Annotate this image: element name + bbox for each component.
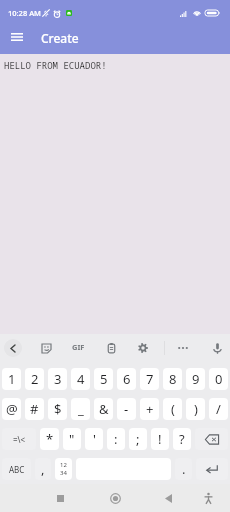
button[interactable]: 6	[117, 368, 136, 390]
button[interactable]: 0	[209, 368, 228, 390]
button[interactable]: Stickers	[35, 337, 57, 359]
button[interactable]: $	[48, 398, 67, 420]
staticText: 3	[54, 370, 62, 388]
staticText: 1	[8, 370, 16, 388]
button[interactable]: _	[71, 398, 90, 420]
button[interactable]: Recent apps	[48, 486, 72, 510]
staticText: 7	[146, 370, 154, 388]
button[interactable]: Back	[4, 339, 22, 357]
staticText: :	[114, 430, 118, 448]
button[interactable]: Home	[103, 486, 127, 510]
staticText: 10:28 AM	[8, 8, 41, 18]
button[interactable]: 12	[55, 458, 72, 480]
staticText: )	[194, 400, 198, 418]
button[interactable]: &	[94, 398, 113, 420]
button[interactable]: GIF	[68, 337, 88, 357]
button[interactable]: +	[140, 398, 159, 420]
staticText: .	[182, 460, 186, 478]
button[interactable]: :	[107, 428, 125, 450]
button[interactable]: ABC	[2, 458, 31, 480]
button[interactable]: Settings	[132, 337, 154, 359]
button[interactable]: 4	[71, 368, 90, 390]
button[interactable]: =\<	[2, 428, 36, 450]
staticText: (	[171, 400, 175, 418]
button[interactable]: .	[175, 458, 192, 480]
staticText: *	[46, 430, 54, 448]
button[interactable]: Enter	[196, 458, 228, 480]
staticText: 2	[31, 370, 39, 388]
staticText: ,	[41, 460, 45, 478]
button[interactable]: 1	[2, 368, 21, 390]
button[interactable]: 7	[140, 368, 159, 390]
staticText: 5	[100, 370, 108, 388]
staticText: $	[54, 400, 62, 418]
staticText: GIF	[72, 342, 85, 352]
button[interactable]: 2	[25, 368, 44, 390]
button[interactable]: #	[25, 398, 44, 420]
button[interactable]: Voice input	[206, 337, 228, 359]
staticText: +	[146, 400, 154, 418]
button[interactable]: 5	[94, 368, 113, 390]
button[interactable]: )	[186, 398, 205, 420]
staticText: HELLO FROM ECUADOR!	[4, 59, 107, 71]
staticText: =\<	[13, 434, 26, 445]
other: Backspace	[205, 434, 219, 445]
button[interactable]: Accessibility	[196, 486, 220, 510]
staticText: _	[78, 400, 84, 418]
button[interactable]: More options	[172, 337, 194, 359]
staticText: &	[99, 400, 109, 418]
staticText: 6	[123, 370, 131, 388]
button[interactable]: *	[40, 428, 59, 450]
staticText: 8	[169, 370, 177, 388]
button[interactable]: 3	[48, 368, 67, 390]
staticText: /	[216, 400, 221, 418]
button[interactable]: /	[209, 398, 228, 420]
button[interactable]: (	[163, 398, 182, 420]
staticText: #	[30, 400, 39, 418]
staticText: "	[69, 430, 75, 448]
staticText: !	[158, 430, 162, 448]
button[interactable]: '	[85, 428, 103, 450]
button[interactable]: Clipboard	[100, 337, 122, 359]
button[interactable]: "	[63, 428, 81, 450]
button[interactable]: 8	[163, 368, 182, 390]
button[interactable]: Backspace	[195, 428, 228, 450]
staticText: 9	[192, 370, 200, 388]
staticText: '	[93, 430, 96, 448]
staticText: Create	[41, 30, 79, 46]
staticText: 0	[215, 370, 223, 388]
button[interactable]: @	[2, 398, 21, 420]
button[interactable]: !	[151, 428, 169, 450]
button[interactable]: -	[117, 398, 136, 420]
button[interactable]: Open navigation menu	[4, 24, 30, 50]
button[interactable]: 9	[186, 368, 205, 390]
button[interactable]: ,	[35, 458, 51, 480]
button[interactable]: Back	[156, 486, 180, 510]
staticText: 34	[60, 469, 67, 477]
staticText: -	[124, 400, 129, 418]
staticText: ;	[136, 430, 140, 448]
button[interactable]: ?	[173, 428, 191, 450]
other: Enter	[206, 464, 218, 474]
staticText: ?	[179, 430, 185, 448]
staticText: 4	[77, 370, 85, 388]
staticText: ABC	[9, 464, 25, 475]
staticText: @	[6, 400, 18, 418]
staticText: 12	[60, 461, 67, 469]
button[interactable]: ;	[129, 428, 147, 450]
